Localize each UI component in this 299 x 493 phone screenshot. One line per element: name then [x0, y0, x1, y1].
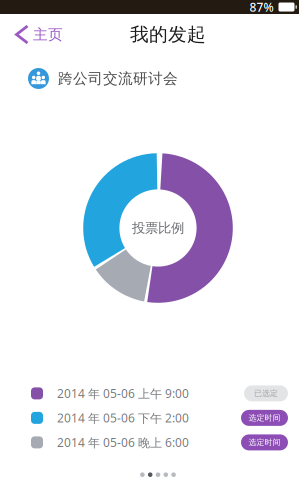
button[interactable]: 已选定 [244, 385, 288, 401]
staticText: 选定时间 [248, 413, 280, 423]
button[interactable]: 选定时间 [241, 410, 288, 426]
button[interactable]: 主页 [0, 14, 71, 55]
staticText: 87% [249, 0, 273, 15]
staticText: 2014 年 05-06 上午 9:00 [57, 385, 189, 401]
staticText: 主页 [33, 25, 63, 43]
staticText: 我的发起 [130, 23, 206, 46]
staticText: 2014 年 05-06 晚上 6:00 [57, 434, 189, 450]
staticText: 已选定 [254, 388, 278, 398]
staticText: 投票比例 [132, 220, 184, 236]
button[interactable]: 选定时间 [241, 434, 288, 450]
staticText: 2014 年 05-06 下午 2:00 [57, 410, 189, 426]
staticText: 跨公司交流研讨会 [58, 69, 178, 87]
staticText: 选定时间 [248, 437, 280, 447]
